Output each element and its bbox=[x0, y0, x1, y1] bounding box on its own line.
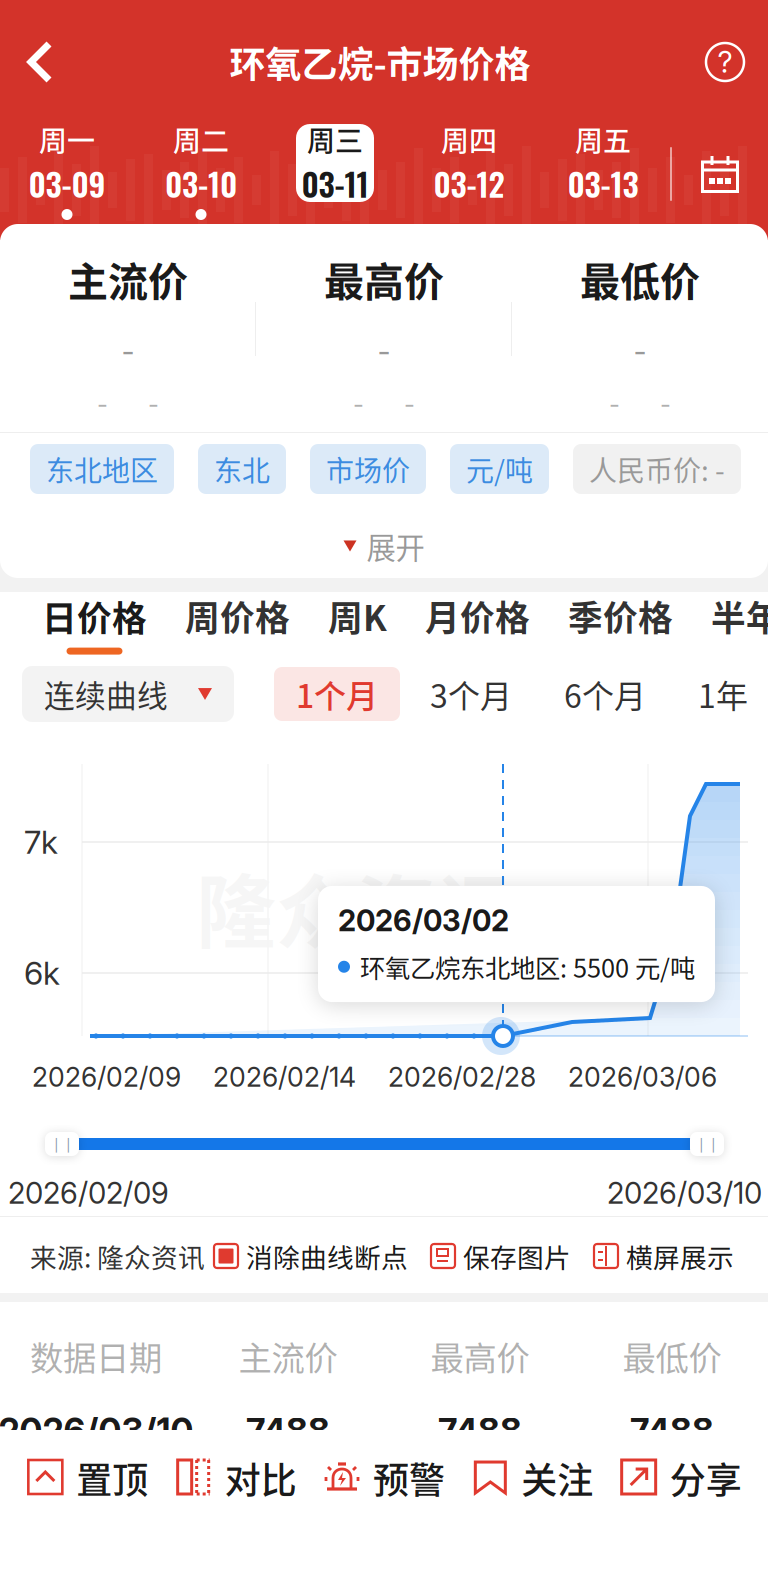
staticText: 环氧乙烷-市场价格 bbox=[229, 36, 530, 88]
staticText: 市场价 bbox=[326, 449, 410, 489]
staticText: 保存图片 bbox=[463, 1237, 571, 1275]
button[interactable]: 周二 bbox=[134, 124, 268, 224]
staticText: 数据日期 bbox=[30, 1332, 162, 1380]
staticText: 置顶 bbox=[76, 1452, 148, 1504]
staticText: 隆众资讯 bbox=[196, 848, 516, 964]
button[interactable]: 元/吨 bbox=[450, 444, 549, 494]
button[interactable]: 周五 bbox=[536, 124, 670, 224]
button[interactable]: Calendar bbox=[672, 154, 768, 194]
button[interactable]: 半年价格 bbox=[711, 592, 768, 654]
button[interactable]: 预警 bbox=[323, 1430, 445, 1526]
button[interactable]: 东北 bbox=[198, 444, 286, 494]
button[interactable]: 展开 bbox=[0, 510, 768, 582]
staticText: 2026/03/06 bbox=[568, 1061, 717, 1093]
button[interactable]: 月价格 bbox=[425, 592, 530, 654]
staticText: ❘❘ bbox=[695, 1135, 719, 1153]
staticText: 1个月 bbox=[296, 671, 378, 717]
staticText: 最高价 bbox=[324, 250, 444, 308]
button[interactable]: 对比 bbox=[175, 1430, 297, 1526]
staticText: - bbox=[404, 389, 415, 418]
staticText: 环氧乙烷东北地区: 5500 元/吨 bbox=[360, 948, 695, 985]
button[interactable]: 周四 bbox=[402, 124, 536, 224]
staticText: 季价格 bbox=[568, 591, 673, 641]
staticText: 03-10 bbox=[165, 160, 237, 207]
staticText: ? bbox=[717, 44, 732, 80]
staticText: 主流价 bbox=[238, 1332, 337, 1380]
staticText: 最高价 bbox=[430, 1332, 529, 1380]
staticText: 2026/02/14 bbox=[213, 1061, 356, 1093]
staticText: - bbox=[633, 334, 646, 369]
button[interactable]: 3个月 bbox=[408, 667, 534, 721]
button[interactable]: 市场价 bbox=[310, 444, 426, 494]
staticText: 1年 bbox=[698, 671, 748, 717]
staticText: 周一 bbox=[39, 119, 95, 159]
staticText: 东北 bbox=[214, 449, 270, 489]
staticText: 03-13 bbox=[567, 160, 638, 207]
button[interactable]: 周三 bbox=[268, 124, 402, 224]
staticText: - bbox=[121, 334, 134, 369]
staticText: 2026/02/09 bbox=[8, 1175, 169, 1211]
staticText: 3个月 bbox=[430, 671, 512, 717]
button[interactable]: 关注 bbox=[471, 1430, 593, 1526]
button[interactable]: 消除曲线断点 bbox=[213, 1237, 408, 1275]
staticText: 对比 bbox=[225, 1452, 297, 1504]
button[interactable]: 周K bbox=[328, 592, 387, 654]
staticText: 分享 bbox=[670, 1452, 742, 1504]
staticText: 最低价 bbox=[580, 250, 700, 308]
button[interactable]: 季价格 bbox=[568, 592, 673, 654]
staticText: 周三 bbox=[307, 119, 363, 159]
staticText: 最低价 bbox=[622, 1332, 721, 1380]
button[interactable]: 周一 bbox=[0, 124, 134, 224]
staticText: 6个月 bbox=[564, 671, 646, 717]
staticText: 半年价格 bbox=[711, 591, 768, 641]
staticText: ❘❘ bbox=[50, 1135, 74, 1153]
staticText: 消除曲线断点 bbox=[246, 1237, 408, 1275]
staticText: - bbox=[660, 389, 671, 418]
button[interactable]: 1个月 bbox=[274, 667, 400, 721]
staticText: 7488 bbox=[438, 1410, 522, 1452]
staticText: 2026/03/10 bbox=[607, 1175, 762, 1211]
button[interactable]: 人民币价: - bbox=[573, 444, 741, 494]
staticText: 主流价 bbox=[68, 250, 188, 308]
staticText: 7488 bbox=[630, 1410, 714, 1452]
staticText: 展开 bbox=[366, 525, 424, 567]
button[interactable]: 1年 bbox=[676, 667, 768, 721]
staticText: 2026/02/28 bbox=[388, 1061, 536, 1093]
button[interactable]: 东北地区 bbox=[30, 444, 174, 494]
staticText: - bbox=[353, 389, 364, 418]
staticText: 03-09 bbox=[28, 160, 105, 207]
staticText: 03-11 bbox=[301, 160, 368, 207]
staticText: 周五 bbox=[575, 119, 631, 159]
staticText: 来源: 隆众资讯 bbox=[30, 1237, 205, 1275]
button[interactable]: 周价格 bbox=[185, 592, 290, 654]
staticText: 人民币价: - bbox=[589, 449, 725, 489]
button[interactable]: 连续曲线 bbox=[22, 666, 234, 722]
staticText: 横屏展示 bbox=[626, 1237, 734, 1275]
staticText: 2026/02/09 bbox=[32, 1061, 181, 1093]
staticText: 7488 bbox=[246, 1410, 330, 1452]
button[interactable]: Back bbox=[0, 27, 74, 97]
button[interactable]: 日价格 bbox=[42, 592, 147, 654]
staticText: 2026/03/10 bbox=[0, 1410, 193, 1452]
staticText: 周价格 bbox=[185, 591, 290, 641]
staticText: 2026/03/02 bbox=[338, 903, 509, 938]
staticText: 预警 bbox=[373, 1452, 445, 1504]
button[interactable]: 置顶 bbox=[26, 1430, 148, 1526]
staticText: 连续曲线 bbox=[44, 672, 168, 716]
staticText: 月价格 bbox=[425, 591, 530, 641]
button[interactable]: 6个月 bbox=[542, 667, 668, 721]
staticText: 东北地区 bbox=[46, 449, 158, 489]
staticText: 7k bbox=[24, 823, 58, 861]
button[interactable]: 分享 bbox=[620, 1430, 742, 1526]
staticText: - bbox=[377, 334, 390, 369]
staticText: - bbox=[97, 389, 108, 418]
button[interactable]: 保存图片 bbox=[430, 1237, 571, 1275]
button[interactable]: Help bbox=[686, 27, 768, 97]
staticText: 03-12 bbox=[433, 160, 504, 207]
staticText: - bbox=[609, 389, 620, 418]
staticText: 周二 bbox=[173, 119, 229, 159]
staticText: 元/吨 bbox=[466, 449, 533, 489]
staticText: 周四 bbox=[441, 119, 497, 159]
button[interactable]: 横屏展示 bbox=[593, 1237, 734, 1275]
staticText: 关注 bbox=[521, 1452, 593, 1504]
